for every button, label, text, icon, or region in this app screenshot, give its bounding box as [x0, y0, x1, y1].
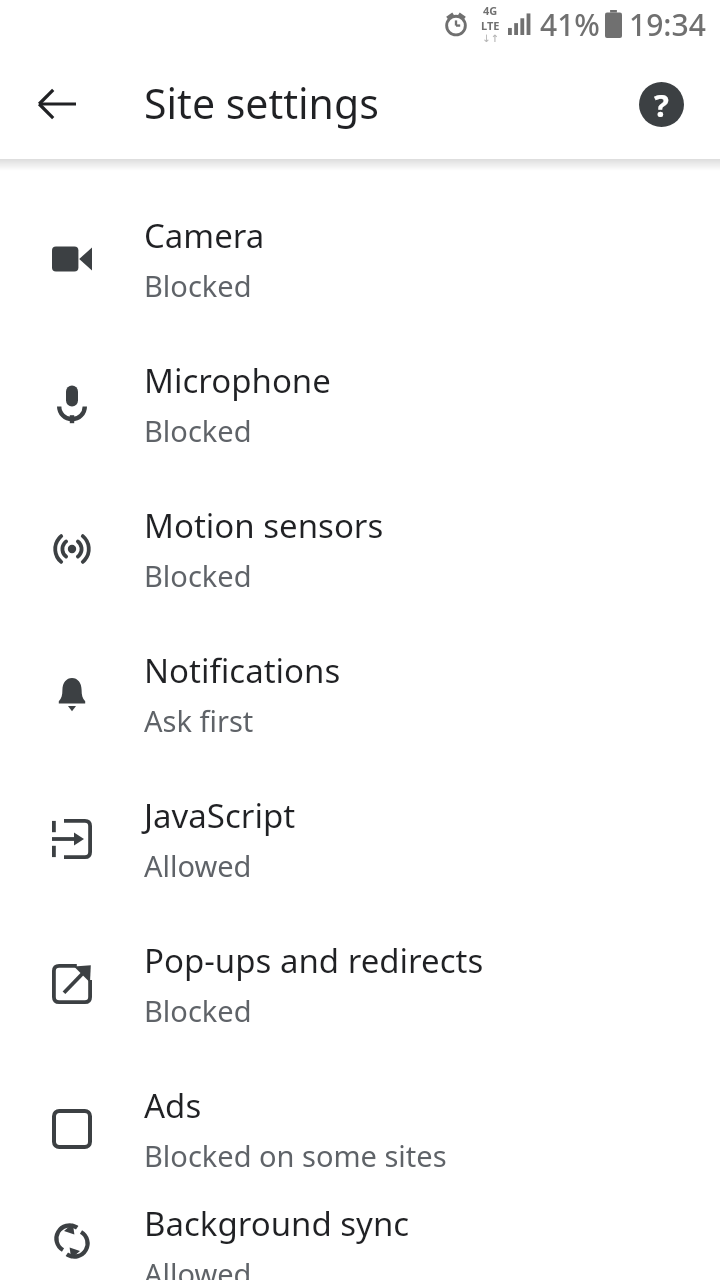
staticText: LTE — [481, 18, 500, 33]
staticText: Ask first — [144, 701, 254, 740]
button[interactable]: Ads — [0, 1056, 720, 1201]
button[interactable]: Notifications — [0, 621, 720, 766]
staticText: Blocked — [144, 556, 252, 595]
other: Motion sensors — [52, 529, 92, 569]
other: JavaScript — [52, 819, 92, 859]
staticText: Blocked on some sites — [144, 1136, 447, 1175]
button[interactable]: Camera — [0, 186, 720, 331]
other: Pop-ups and redirects — [52, 964, 92, 1004]
button[interactable]: Pop-ups and redirects — [0, 911, 720, 1056]
staticText: ↓↑ — [482, 33, 499, 45]
staticText: 19:34 — [629, 4, 706, 45]
button[interactable]: JavaScript — [0, 766, 720, 911]
button[interactable]: Back — [21, 68, 93, 140]
staticText: Blocked — [144, 991, 252, 1030]
staticText: Motion sensors — [144, 503, 384, 548]
staticText: Allowed — [144, 846, 252, 885]
other: Notifications — [52, 674, 92, 714]
staticText: Camera — [144, 213, 265, 258]
button[interactable]: Background sync — [0, 1201, 720, 1280]
button[interactable]: Help — [627, 70, 695, 138]
button[interactable]: Motion sensors — [0, 476, 720, 621]
other: Camera — [52, 239, 92, 279]
staticText: Site settings — [144, 75, 379, 131]
staticText: Microphone — [144, 358, 331, 403]
staticText: ? — [654, 84, 669, 126]
staticText: Blocked — [144, 266, 252, 305]
staticText: Background sync — [144, 1201, 410, 1246]
staticText: 4G — [483, 3, 498, 18]
staticText: Pop-ups and redirects — [144, 938, 484, 983]
staticText: Notifications — [144, 648, 341, 693]
staticText: JavaScript — [144, 793, 296, 838]
other: Background sync — [52, 1221, 92, 1261]
staticText: Ads — [144, 1083, 202, 1128]
staticText: 41% — [540, 4, 600, 45]
staticText: Blocked — [144, 411, 252, 450]
staticText: Allowed — [144, 1254, 252, 1280]
other: Microphone — [52, 384, 92, 424]
other: Ads — [52, 1109, 92, 1149]
button[interactable]: Microphone — [0, 331, 720, 476]
